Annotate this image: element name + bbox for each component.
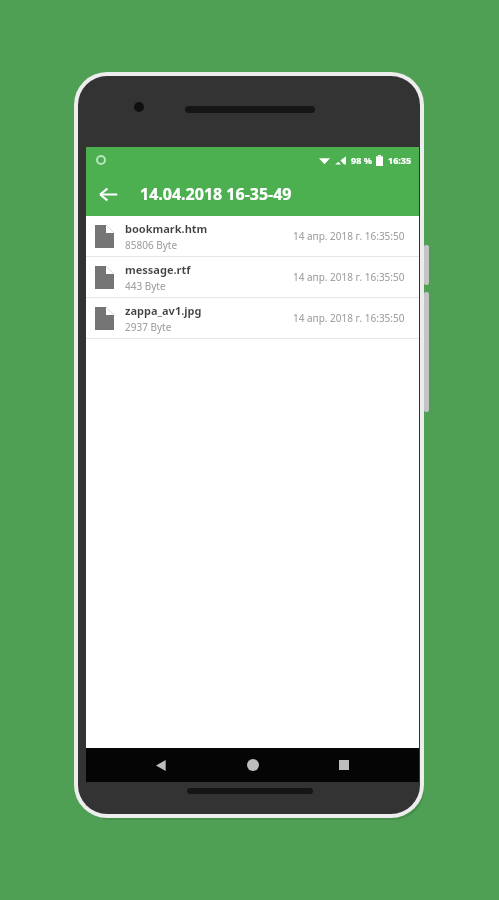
button[interactable]: Home	[236, 748, 270, 782]
staticText: 85806 Byte	[125, 238, 178, 252]
staticText: 14 апр. 2018 г. 16:35:50	[293, 270, 405, 284]
button[interactable]: Recents	[327, 748, 361, 782]
staticText: bookmark.htm	[125, 221, 208, 236]
staticText: 14 апр. 2018 г. 16:35:50	[293, 229, 405, 243]
staticText: 16:35	[388, 154, 412, 166]
button[interactable]: Back	[144, 748, 178, 782]
staticText: 14.04.2018 16-35-49	[140, 183, 292, 205]
staticText: zappa_av1.jpg	[125, 303, 202, 318]
staticText: 14 апр. 2018 г. 16:35:50	[293, 311, 405, 325]
button[interactable]: zappa_av1.jpg	[86, 298, 419, 338]
staticText: 443 Byte	[125, 279, 166, 293]
button[interactable]: message.rtf	[86, 257, 419, 297]
staticText: 2937 Byte	[125, 320, 172, 334]
staticText: 98 %	[351, 154, 372, 166]
staticText: message.rtf	[125, 262, 191, 277]
button[interactable]: bookmark.htm	[86, 216, 419, 256]
button[interactable]: Back	[86, 172, 130, 216]
